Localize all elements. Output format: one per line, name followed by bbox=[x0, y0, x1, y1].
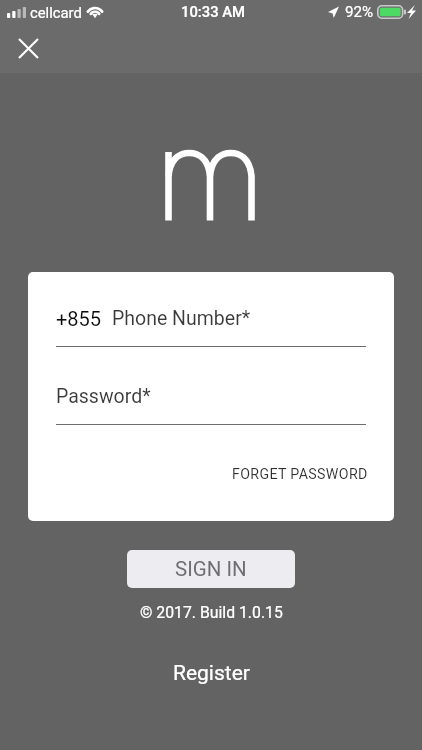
staticText: © 2017. Build 1.0.15 bbox=[140, 603, 283, 622]
staticText: 10:33 AM bbox=[181, 3, 246, 20]
staticText: +855 bbox=[56, 307, 102, 330]
staticText: Register bbox=[173, 661, 250, 686]
staticText: SIGN IN bbox=[175, 557, 247, 581]
staticText: Phone Number* bbox=[112, 307, 251, 330]
staticText: Password* bbox=[56, 385, 151, 408]
button[interactable]: Register bbox=[155, 655, 268, 692]
button[interactable]: +855 bbox=[56, 296, 366, 347]
button[interactable]: Password* bbox=[56, 374, 366, 425]
staticText: FORGET PASSWORD bbox=[232, 466, 368, 483]
button[interactable]: FORGET PASSWORD bbox=[226, 454, 374, 495]
staticText: 92% bbox=[345, 3, 374, 21]
button[interactable]: Close bbox=[7, 27, 49, 69]
button[interactable]: SIGN IN bbox=[127, 550, 295, 588]
staticText: cellcard bbox=[30, 4, 82, 21]
